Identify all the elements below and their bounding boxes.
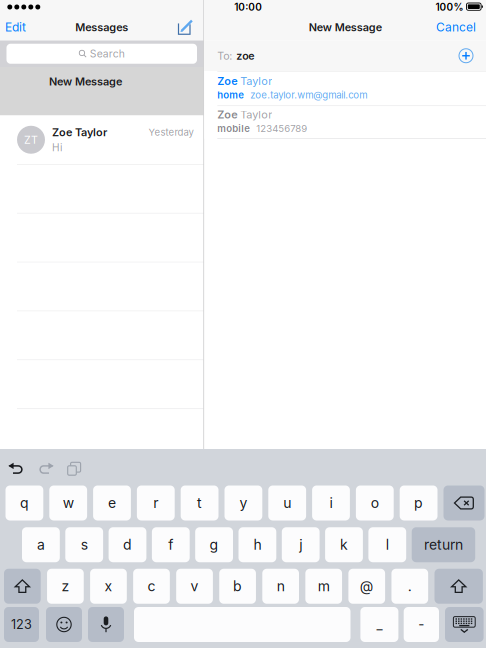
staticText: m <box>318 578 330 595</box>
button[interactable]: c <box>133 569 170 604</box>
staticText: i <box>329 494 332 511</box>
staticText: @ <box>360 578 374 595</box>
button[interactable]: - <box>404 607 439 642</box>
button[interactable]: Search <box>6 44 197 64</box>
staticText: . <box>408 578 412 595</box>
button[interactable]: r <box>137 485 175 520</box>
staticText: b <box>233 578 242 595</box>
button[interactable]: n <box>262 569 299 604</box>
button[interactable]: q <box>5 485 43 520</box>
button[interactable]: y <box>224 485 262 520</box>
staticText: q <box>20 494 29 511</box>
button[interactable]: Edit <box>5 14 39 40</box>
button[interactable]: x <box>90 569 127 604</box>
button[interactable]: Cancel <box>434 14 476 40</box>
button[interactable]: Hide keyboard <box>445 607 484 642</box>
button[interactable]: d <box>109 527 146 562</box>
staticText: _ <box>376 616 382 632</box>
staticText: 123 <box>11 617 32 632</box>
button[interactable]: @ <box>348 569 385 604</box>
button[interactable]: t <box>181 485 218 520</box>
button[interactable]: z <box>47 569 84 604</box>
staticText: ZT <box>24 133 38 146</box>
staticText: 10:00 <box>234 1 262 13</box>
staticText: return <box>424 536 463 553</box>
staticText: home <box>217 89 244 101</box>
button[interactable]: w <box>49 485 87 520</box>
staticText: New Message <box>49 75 122 88</box>
button[interactable]: b <box>219 569 256 604</box>
button[interactable]: ZT <box>0 115 203 164</box>
button[interactable]: Dictation <box>88 607 124 642</box>
staticText: zoe <box>236 49 254 62</box>
button[interactable]: Shift <box>434 569 483 604</box>
staticText: c <box>147 578 155 595</box>
staticText: u <box>283 494 291 511</box>
button[interactable]: Delete <box>443 485 484 520</box>
button[interactable]: m <box>305 569 342 604</box>
staticText: 100% <box>435 1 463 13</box>
button[interactable]: a <box>22 527 60 562</box>
staticText: x <box>104 578 112 595</box>
staticText: a <box>37 536 45 553</box>
staticText: s <box>81 536 88 553</box>
button[interactable]: Zoe <box>204 105 486 138</box>
staticText: e <box>108 494 116 511</box>
staticText: mobile <box>217 123 250 134</box>
staticText: Messages <box>75 21 128 34</box>
button[interactable]: Shift <box>4 569 41 604</box>
staticText: d <box>123 536 132 553</box>
staticText: y <box>239 494 247 511</box>
button[interactable]: Redo <box>31 456 60 482</box>
button[interactable]: p <box>400 485 437 520</box>
button[interactable]: Zoe <box>204 71 486 105</box>
staticText: g <box>210 536 219 553</box>
button[interactable]: s <box>65 527 103 562</box>
button[interactable]: 123 <box>4 607 39 642</box>
button[interactable]: k <box>325 527 363 562</box>
button[interactable]: f <box>152 527 190 562</box>
staticText: h <box>253 536 261 553</box>
staticText: To: <box>217 49 232 62</box>
staticText: Cancel <box>436 20 476 34</box>
button[interactable]: g <box>195 527 233 562</box>
button[interactable]: l <box>368 527 406 562</box>
staticText: p <box>414 494 423 511</box>
button[interactable]: j <box>282 527 320 562</box>
staticText: t <box>197 494 202 511</box>
staticText: r <box>153 494 158 511</box>
staticText: Edit <box>5 20 26 34</box>
staticText: - <box>418 616 424 632</box>
button[interactable]: e <box>93 485 131 520</box>
staticText: o <box>371 494 379 511</box>
staticText: 123456789 <box>250 123 307 134</box>
button[interactable]: return <box>412 527 475 562</box>
button[interactable]: u <box>268 485 306 520</box>
staticText: w <box>63 494 74 511</box>
button[interactable]: Compose <box>172 14 198 40</box>
button[interactable]: o <box>356 485 394 520</box>
button[interactable]: Paste <box>60 456 89 482</box>
staticText: Taylor <box>237 74 272 88</box>
staticText: Zoe Taylor <box>52 126 107 139</box>
button[interactable]: Emoji <box>46 607 82 642</box>
button[interactable]: i <box>312 485 350 520</box>
staticText: j <box>299 536 302 553</box>
staticText: l <box>386 536 389 553</box>
button[interactable]: h <box>238 527 276 562</box>
staticText: v <box>191 578 199 595</box>
staticText: Hi <box>52 141 62 154</box>
staticText: Search <box>90 47 125 60</box>
staticText: Zoe <box>217 108 237 121</box>
staticText: f <box>168 536 173 553</box>
button[interactable]: v <box>176 569 213 604</box>
staticText: Taylor <box>237 108 272 121</box>
staticText: Zoe <box>217 74 237 88</box>
button[interactable]: . <box>391 569 428 604</box>
button[interactable]: _ <box>360 607 398 642</box>
button[interactable]: Add contact <box>455 45 477 67</box>
button[interactable]: Undo <box>2 456 31 482</box>
staticText: k <box>340 536 348 553</box>
